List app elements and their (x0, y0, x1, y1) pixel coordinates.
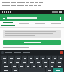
button[interactable] (28, 56, 33, 60)
button[interactable] (56, 60, 62, 64)
button[interactable] (52, 56, 57, 60)
button[interactable] (3, 40, 61, 45)
button[interactable] (1, 64, 10, 68)
button[interactable] (49, 64, 54, 68)
button[interactable] (31, 64, 36, 68)
button[interactable] (40, 56, 45, 60)
button[interactable] (11, 64, 17, 68)
button[interactable] (35, 60, 41, 64)
button[interactable] (49, 60, 55, 64)
button[interactable] (28, 60, 34, 64)
button[interactable]: Back (2, 16, 6, 20)
button[interactable] (1, 56, 7, 60)
button[interactable] (46, 56, 51, 60)
button[interactable] (48, 21, 64, 27)
button[interactable] (42, 60, 48, 64)
button[interactable] (37, 64, 42, 68)
button[interactable]: Voice input (60, 51, 63, 54)
button[interactable] (8, 60, 13, 64)
button[interactable] (8, 56, 14, 60)
button[interactable] (25, 64, 30, 68)
button[interactable] (15, 56, 21, 60)
button[interactable] (22, 56, 27, 60)
button[interactable] (21, 60, 27, 64)
button[interactable]: Emoji (1, 51, 4, 54)
button[interactable] (43, 64, 48, 68)
button[interactable] (58, 56, 63, 60)
button[interactable] (34, 56, 39, 60)
button[interactable] (1, 68, 11, 72)
button[interactable] (12, 68, 18, 72)
button[interactable]: Enter (53, 68, 63, 72)
button[interactable] (46, 68, 52, 72)
button[interactable] (16, 21, 32, 27)
button[interactable] (32, 21, 48, 27)
button[interactable]: More options (58, 16, 62, 20)
button[interactable] (14, 60, 20, 64)
button[interactable] (3, 30, 61, 38)
button[interactable] (2, 60, 7, 64)
button[interactable] (55, 64, 63, 68)
button[interactable] (18, 64, 24, 68)
button[interactable] (0, 21, 16, 27)
